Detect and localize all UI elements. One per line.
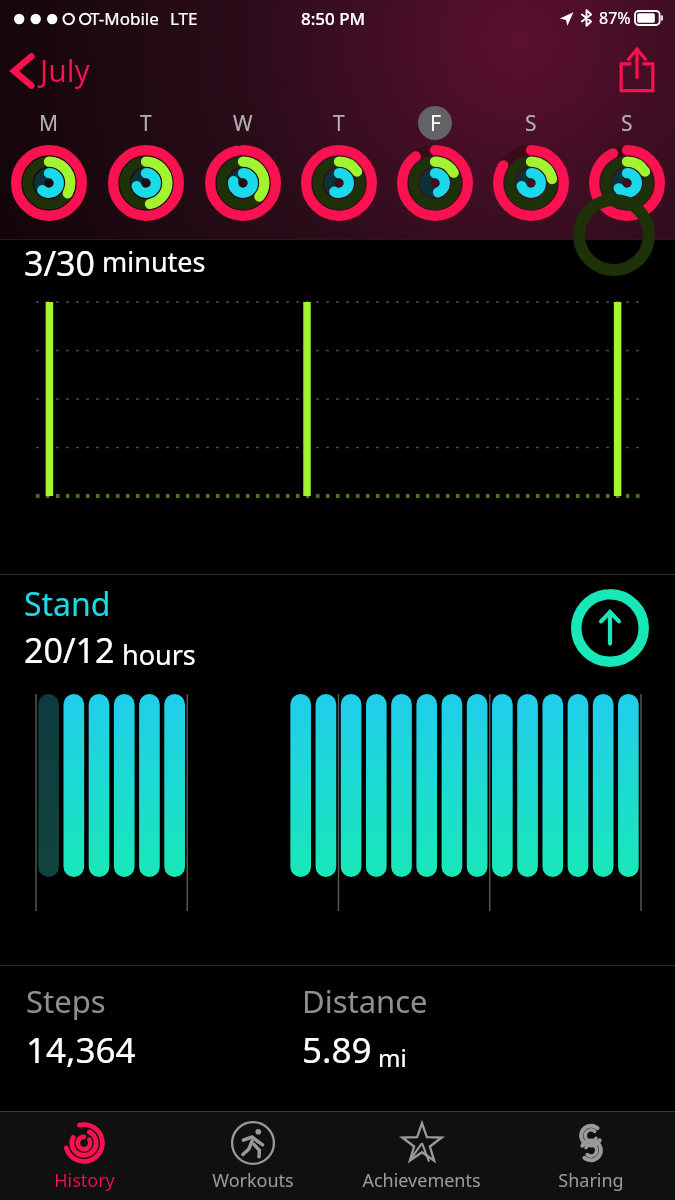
button[interactable]: July bbox=[0, 44, 102, 97]
staticText: Stand bbox=[24, 582, 111, 626]
button[interactable]: Workouts bbox=[168, 1112, 337, 1200]
staticText: M bbox=[39, 109, 59, 138]
staticText: hours bbox=[122, 636, 196, 673]
button[interactable]: S bbox=[579, 106, 675, 231]
staticText: T bbox=[333, 109, 345, 138]
staticText: 5.89 bbox=[302, 1026, 372, 1074]
button[interactable]: Share bbox=[613, 42, 661, 98]
staticText: LTE bbox=[170, 7, 198, 30]
staticText: Steps bbox=[26, 980, 106, 1022]
staticText: 3/30 bbox=[24, 240, 95, 280]
staticText: mi bbox=[378, 1041, 407, 1074]
button[interactable]: M bbox=[0, 106, 97, 231]
staticText: S bbox=[525, 109, 537, 138]
staticText: 14,364 bbox=[26, 1026, 136, 1074]
staticText: 87% bbox=[599, 7, 631, 29]
button[interactable]: Achievements bbox=[337, 1112, 506, 1200]
staticText: Achievements bbox=[362, 1168, 481, 1193]
staticText: S bbox=[621, 109, 633, 138]
button[interactable]: S bbox=[483, 106, 579, 231]
button[interactable]: W bbox=[194, 106, 291, 231]
staticText: minutes bbox=[102, 243, 206, 280]
staticText: T-Mobile bbox=[90, 7, 159, 30]
staticText: Sharing bbox=[558, 1168, 624, 1193]
button[interactable]: Sharing bbox=[506, 1112, 675, 1200]
button[interactable]: Stand goal reached bbox=[571, 589, 649, 667]
button[interactable]: History bbox=[0, 1112, 168, 1200]
staticText: 20/12 bbox=[24, 627, 115, 673]
staticText: July bbox=[40, 50, 90, 91]
staticText: 8:50 PM bbox=[301, 7, 366, 30]
button[interactable]: T bbox=[291, 106, 387, 231]
button[interactable]: F bbox=[387, 106, 483, 231]
staticText: F bbox=[430, 109, 441, 138]
staticText: History bbox=[54, 1168, 115, 1193]
button[interactable]: T bbox=[97, 106, 194, 231]
staticText: Workouts bbox=[212, 1168, 294, 1193]
staticText: W bbox=[233, 109, 253, 138]
staticText: T bbox=[140, 109, 152, 138]
staticText: Distance bbox=[302, 980, 428, 1022]
